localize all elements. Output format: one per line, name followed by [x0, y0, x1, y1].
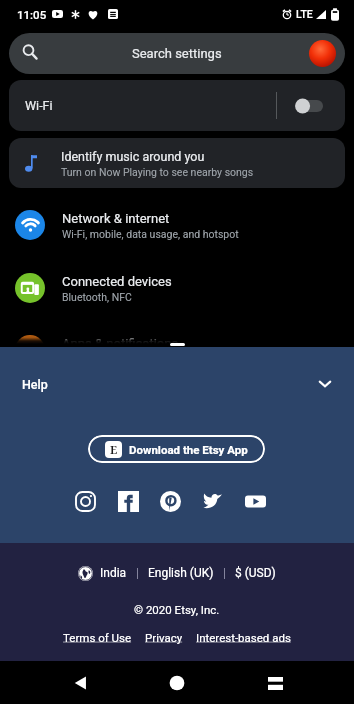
staticText: Apps & notifications — [62, 336, 179, 351]
button[interactable]: Back — [60, 663, 100, 703]
button[interactable]: Identify music around you — [9, 138, 345, 188]
button[interactable]: Connected devices — [0, 258, 354, 318]
button[interactable]: Apps & notifications — [0, 320, 354, 380]
staticText: Bluetooth, NFC — [62, 291, 132, 303]
button[interactable]: Terms of Use — [63, 631, 132, 644]
staticText: English (UK) — [148, 566, 214, 580]
button[interactable]: Twitter — [198, 486, 228, 516]
staticText: 11:05 — [17, 8, 47, 21]
staticText: Help — [22, 377, 48, 392]
staticText: Search settings — [132, 46, 222, 61]
button[interactable]: Network & internet — [0, 195, 354, 255]
staticText: Turn on Now Playing to see nearby songs — [61, 166, 254, 178]
button[interactable]: Search settings — [9, 33, 345, 74]
button[interactable]: Facebook — [113, 486, 143, 516]
button[interactable]: Wi-Fi — [9, 80, 345, 131]
staticText: © 2020 Etsy, Inc. — [134, 603, 220, 616]
button[interactable]: Help — [0, 347, 354, 421]
staticText: Download the Etsy App — [129, 443, 248, 456]
staticText: Wi-Fi, mobile, data usage, and hotspot — [62, 228, 239, 240]
button[interactable]: Interest-based ads — [196, 631, 291, 644]
button[interactable]: YouTube — [240, 486, 270, 516]
staticText: Connected devices — [62, 274, 172, 289]
button[interactable]: Instagram — [70, 486, 100, 516]
staticText: | — [223, 566, 226, 580]
staticText: E — [110, 442, 118, 457]
staticText: Identify music around you — [61, 149, 205, 164]
staticText: Network & internet — [62, 211, 170, 226]
button[interactable]: Pinterest — [155, 486, 185, 516]
staticText: India — [100, 566, 127, 580]
staticText: Wi-Fi — [25, 98, 53, 113]
staticText: | — [136, 566, 139, 580]
button[interactable]: Privacy — [145, 631, 183, 644]
button[interactable]: Home — [157, 663, 197, 703]
button[interactable]: E — [88, 435, 265, 463]
button[interactable]: Recent apps — [255, 663, 295, 703]
staticText: LTE — [296, 8, 313, 20]
staticText: $ (USD) — [235, 566, 276, 580]
